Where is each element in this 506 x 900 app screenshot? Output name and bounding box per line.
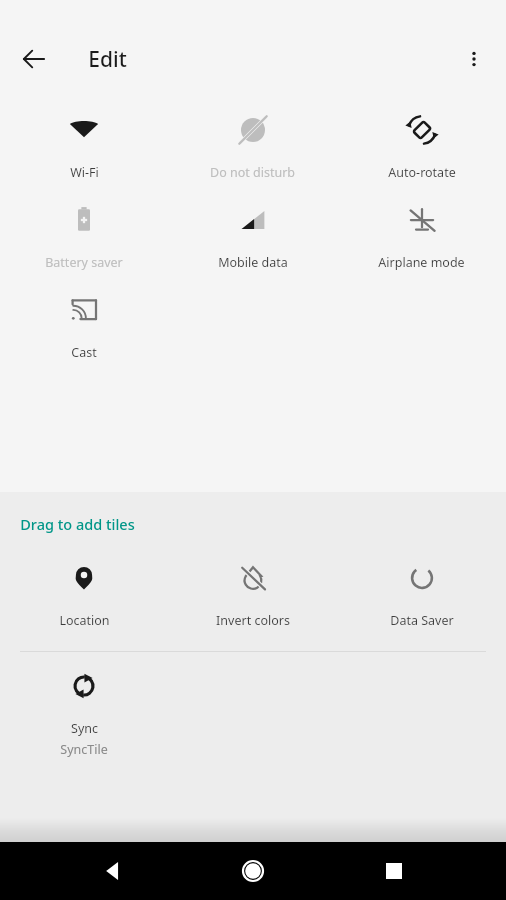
button[interactable]: Wi-Fi <box>0 108 168 181</box>
staticText: Drag to add tiles <box>20 514 135 534</box>
button[interactable]: Battery saver <box>0 198 168 271</box>
button[interactable]: Do not disturb <box>168 108 337 181</box>
staticText: Sync <box>71 720 98 737</box>
button[interactable]: Recent apps <box>366 843 422 899</box>
button[interactable]: Mobile data <box>168 198 337 271</box>
button[interactable]: Home <box>225 843 281 899</box>
staticText: SyncTile <box>60 741 108 758</box>
button[interactable]: Location <box>0 556 168 629</box>
button[interactable]: Sync <box>0 664 168 758</box>
staticText: Do not disturb <box>210 164 295 181</box>
staticText: Cast <box>71 344 97 361</box>
staticText: Battery saver <box>45 254 123 271</box>
staticText: Airplane mode <box>378 254 465 271</box>
staticText: Edit <box>88 45 127 74</box>
button[interactable]: More options <box>450 35 498 83</box>
button[interactable]: Data Saver <box>337 556 506 629</box>
button[interactable]: Invert colors <box>168 556 337 629</box>
button[interactable]: Airplane mode <box>337 198 506 271</box>
staticText: Wi-Fi <box>70 164 99 181</box>
staticText: Mobile data <box>218 254 288 271</box>
button[interactable]: Auto-rotate <box>337 108 506 181</box>
staticText: Auto-rotate <box>388 164 456 181</box>
staticText: Data Saver <box>390 612 454 629</box>
button[interactable]: Back <box>10 35 58 83</box>
button[interactable]: Cast <box>0 288 168 361</box>
staticText: Location <box>59 612 110 629</box>
button[interactable]: Back <box>85 843 141 899</box>
staticText: Invert colors <box>216 612 290 629</box>
